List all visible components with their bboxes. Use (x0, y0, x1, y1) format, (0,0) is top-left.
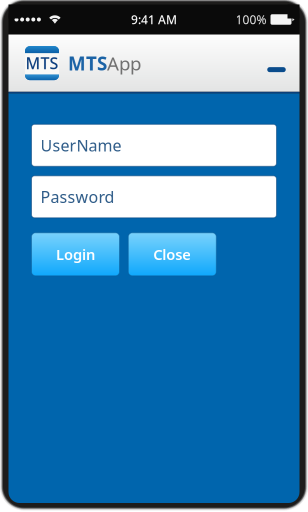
staticText: Password (40, 186, 114, 207)
staticText: Close (153, 245, 191, 264)
button[interactable]: Close (128, 233, 216, 276)
staticText: 100% (235, 11, 266, 27)
staticText: App (107, 51, 141, 76)
staticText: UserName (40, 135, 121, 156)
staticText: 9:41 AM (131, 11, 177, 27)
staticText: MTS (68, 51, 107, 76)
button[interactable]: Login (31, 233, 119, 276)
staticText: Login (56, 245, 95, 264)
button[interactable]: Minimize (258, 40, 294, 86)
staticText: MTS (25, 52, 58, 74)
